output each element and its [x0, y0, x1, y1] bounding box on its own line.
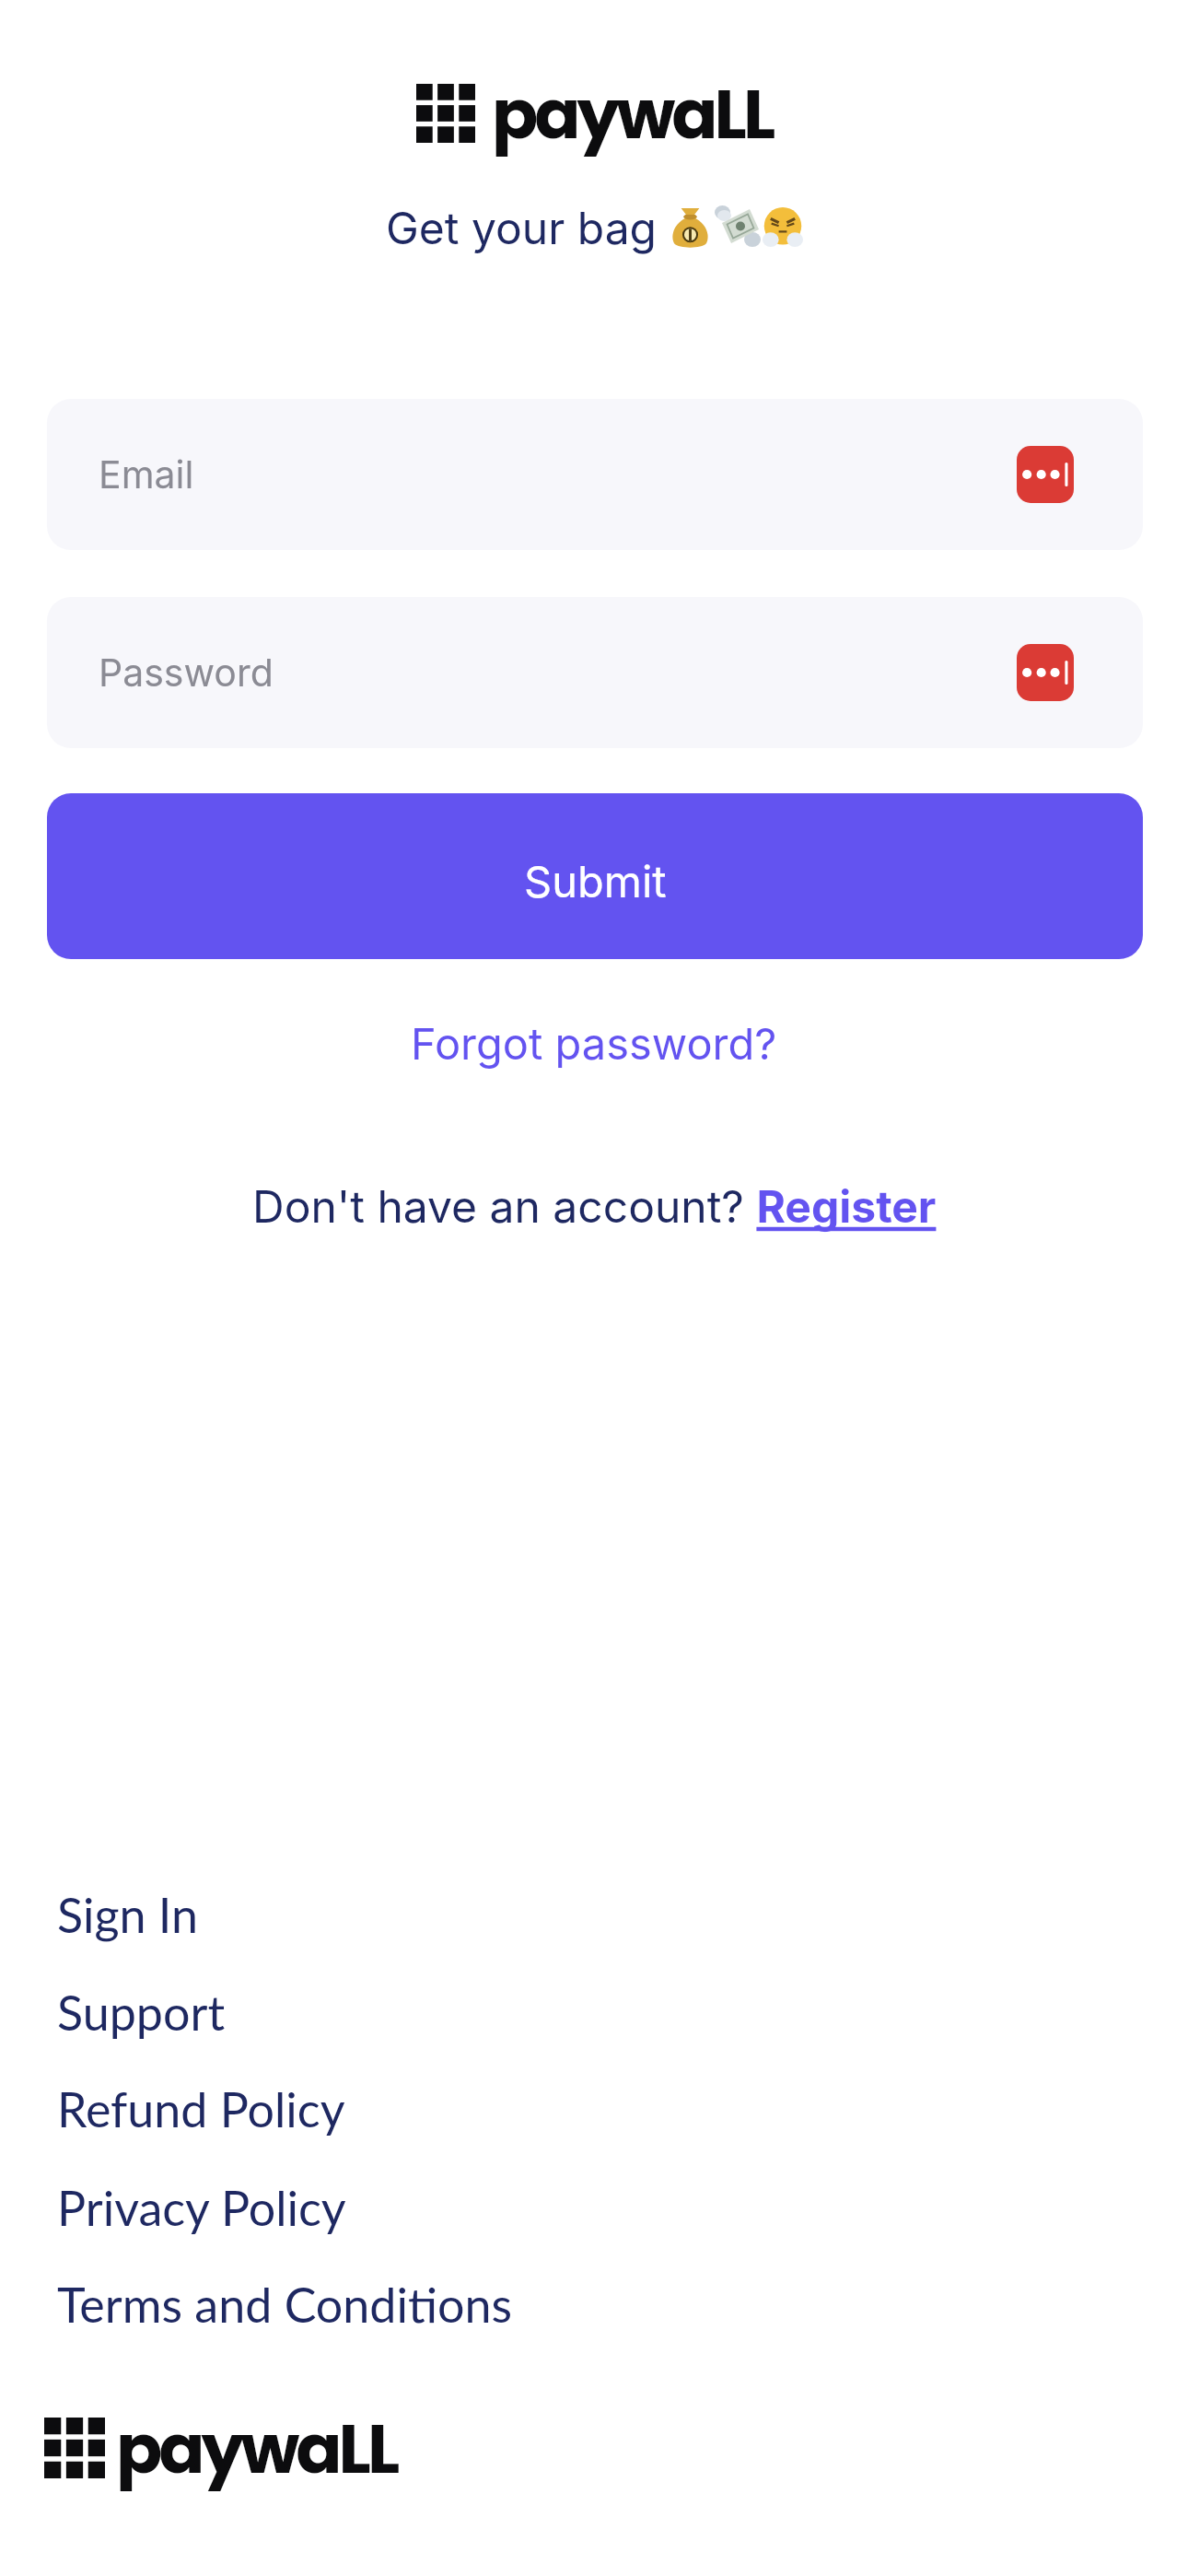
staticText: paywaLL: [492, 66, 773, 162]
button[interactable]: Support: [57, 1984, 226, 2041]
staticText: Privacy Policy: [57, 2179, 346, 2236]
button[interactable]: Privacy Policy: [57, 2179, 346, 2236]
button[interactable]: Email: [47, 399, 1143, 550]
staticText: Support: [57, 1984, 226, 2041]
button[interactable]: Submit: [47, 793, 1143, 959]
staticText: Submit: [524, 855, 667, 907]
staticText: Forgot password?: [411, 1017, 777, 1070]
button[interactable]: Don't have an account? Register: [252, 1179, 937, 1233]
staticText: Don't have an account? Register: [252, 1179, 937, 1233]
button[interactable]: Terms and Conditions: [57, 2276, 513, 2333]
staticText: Sign In: [57, 1886, 199, 1943]
button[interactable]: Refund Policy: [57, 2080, 345, 2137]
staticText: Password: [99, 650, 274, 696]
button[interactable]: Forgot password?: [411, 1017, 777, 1070]
button[interactable]: Sign In: [57, 1886, 199, 1943]
staticText: paywaLL: [116, 2401, 397, 2497]
button[interactable]: Password: [47, 597, 1143, 748]
staticText: Terms and Conditions: [57, 2276, 513, 2333]
staticText: Get your bag: [386, 201, 670, 254]
staticText: Refund Policy: [57, 2080, 345, 2137]
staticText: Email: [99, 451, 194, 498]
